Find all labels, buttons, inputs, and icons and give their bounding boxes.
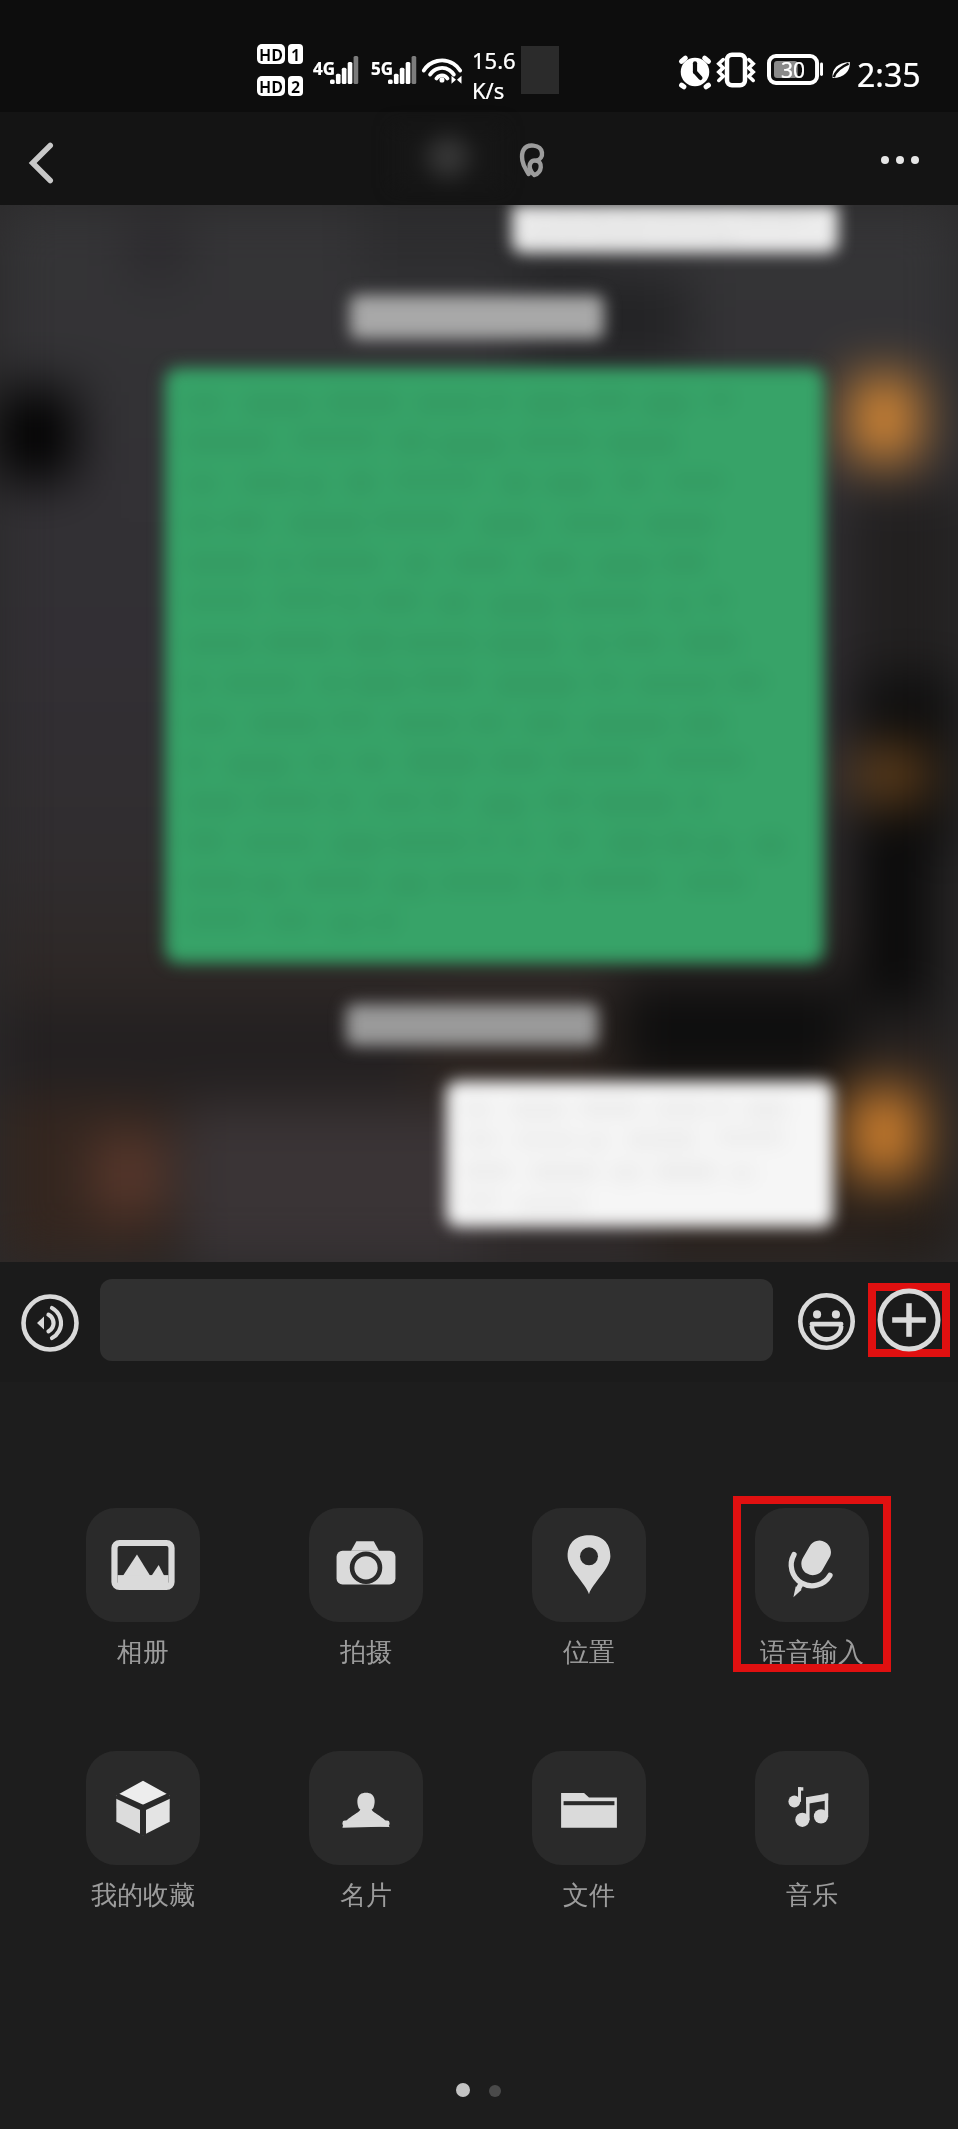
staticText: 相册: [117, 1636, 169, 1668]
staticText: 4G: [313, 57, 336, 80]
button[interactable]: 相册: [68, 1500, 218, 1668]
staticText: 2: [291, 76, 301, 96]
staticText: 30: [781, 56, 806, 83]
staticText: 5G: [371, 57, 394, 80]
staticText: 文件: [563, 1879, 615, 1911]
staticText: K/s: [472, 75, 505, 105]
staticText: 2:35: [857, 53, 921, 97]
button[interactable]: More functions: [872, 1287, 946, 1353]
button[interactable]: 音乐: [737, 1743, 887, 1911]
button[interactable]: More options: [860, 120, 940, 200]
button[interactable]: 拍摄: [291, 1500, 441, 1668]
button[interactable]: 位置: [514, 1500, 664, 1668]
button[interactable]: 名片: [291, 1743, 441, 1911]
staticText: 名片: [340, 1879, 392, 1911]
staticText: 语音输入: [760, 1636, 864, 1668]
staticText: 拍摄: [340, 1636, 392, 1668]
button[interactable]: 文件: [514, 1743, 664, 1911]
staticText: 音乐: [786, 1879, 838, 1911]
staticText: 位置: [563, 1636, 615, 1668]
staticText: HD: [259, 76, 283, 96]
button[interactable]: 我的收藏: [68, 1743, 218, 1911]
button[interactable]: Emoji: [790, 1285, 862, 1357]
staticText: HD: [259, 44, 283, 64]
button[interactable]: 语音输入: [737, 1500, 887, 1668]
button[interactable]: Back: [2, 124, 80, 202]
staticText: 我的收藏: [91, 1879, 195, 1911]
staticText: 15.6: [472, 45, 516, 75]
staticText: 1: [291, 44, 301, 64]
button[interactable]: Voice message: [14, 1287, 86, 1359]
